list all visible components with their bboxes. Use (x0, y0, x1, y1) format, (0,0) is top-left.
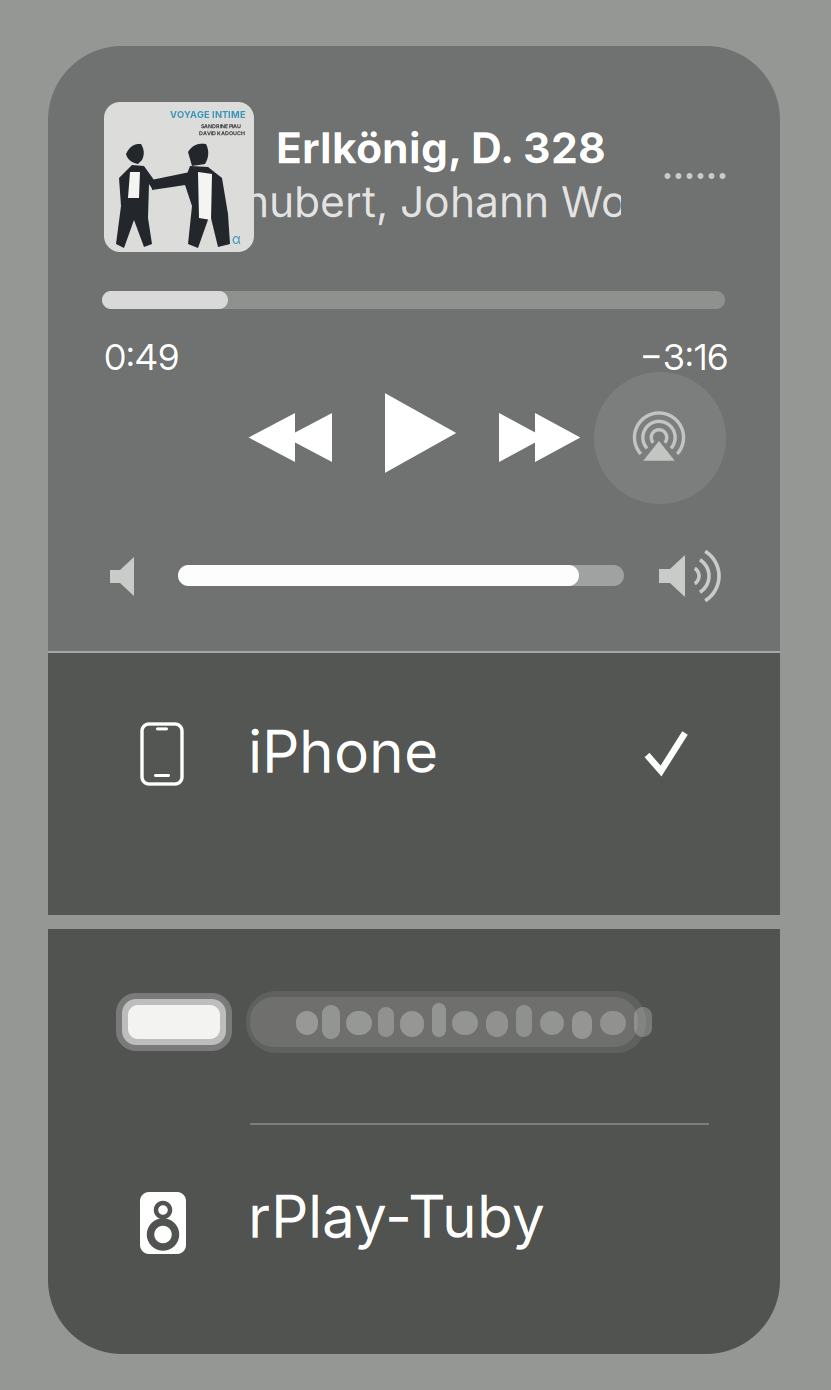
staticText: −3:16 (640, 335, 728, 379)
staticText: 0:49 (104, 335, 179, 379)
button[interactable]: Playback position (102, 291, 725, 309)
staticText: VOYAGE INTIME (170, 109, 246, 120)
button[interactable]: More (662, 173, 728, 179)
staticText: SANDRINE PIAU (201, 123, 241, 129)
button[interactable]: AirPlay (594, 372, 726, 504)
staticText: Erlkönig, D. 328 (276, 122, 606, 174)
staticText: α (232, 231, 241, 247)
button[interactable]: Device (110, 977, 750, 1097)
button[interactable]: iPhone (48, 653, 780, 915)
button[interactable]: Volume (178, 565, 624, 586)
staticText: rPlay-Tuby (248, 1181, 545, 1252)
staticText: hubert, Johann Wolfgang von Goethe (244, 176, 831, 228)
button[interactable]: Fast forward (499, 415, 577, 460)
staticText: DAVID KADOUCH (199, 130, 245, 136)
button[interactable]: rPlay-Tuby (140, 1183, 730, 1263)
button[interactable]: Play (385, 396, 452, 470)
staticText: iPhone (248, 716, 438, 787)
button[interactable]: Rewind (252, 415, 332, 460)
